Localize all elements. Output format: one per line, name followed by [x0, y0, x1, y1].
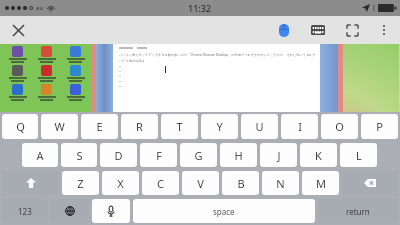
button[interactable]: C — [142, 171, 179, 195]
staticText: パソコン側でセットアップする手順の多いのが「Chrome Remote Desk… — [119, 53, 316, 63]
button[interactable]: X — [102, 171, 139, 195]
staticText: W — [54, 119, 65, 134]
staticText: D — [114, 148, 123, 163]
staticText: X — [117, 176, 124, 191]
button[interactable]: Y — [201, 114, 238, 139]
staticText: L — [356, 148, 362, 163]
button[interactable]: Change language — [51, 199, 89, 223]
button[interactable]: S — [61, 143, 97, 167]
button[interactable]: M — [302, 171, 339, 195]
button[interactable]: U — [241, 114, 278, 139]
staticText: H — [234, 148, 243, 163]
button[interactable]: 123 — [2, 199, 48, 223]
staticText: M — [316, 176, 326, 191]
staticText: S — [76, 148, 83, 163]
staticText: C — [157, 176, 164, 191]
staticText: E — [96, 119, 103, 134]
button[interactable]: More options — [372, 18, 396, 42]
button[interactable]: K — [300, 143, 337, 167]
staticText: G — [194, 148, 203, 163]
button[interactable]: G — [180, 143, 217, 167]
staticText: R — [136, 119, 143, 134]
button[interactable]: N — [262, 171, 299, 195]
button[interactable]: L — [340, 143, 377, 167]
button[interactable]: I — [281, 114, 318, 139]
button[interactable]: H — [220, 143, 257, 167]
staticText: B — [237, 176, 245, 191]
button[interactable]: P — [361, 114, 398, 139]
staticText: 123 — [18, 206, 32, 217]
staticText: N — [276, 176, 285, 191]
staticText: Q — [16, 119, 25, 134]
staticText: return — [346, 206, 370, 217]
button[interactable]: V — [182, 171, 219, 195]
staticText: I — [298, 119, 302, 134]
button[interactable]: A — [22, 143, 58, 167]
button[interactable]: Q — [2, 114, 38, 139]
staticText: Z — [77, 176, 84, 191]
button[interactable]: return — [318, 199, 398, 223]
staticText: 11:32 — [188, 2, 212, 14]
button[interactable]: T — [161, 114, 198, 139]
button[interactable]: E — [81, 114, 118, 139]
staticText: T — [176, 119, 183, 134]
button[interactable]: W — [41, 114, 78, 139]
staticText: au — [36, 4, 44, 12]
staticText: O — [335, 119, 344, 134]
staticText: A — [36, 148, 44, 163]
button[interactable]: Close — [6, 18, 30, 42]
staticText: space — [213, 206, 235, 217]
button[interactable]: R — [121, 114, 158, 139]
button[interactable]: Backspace — [342, 171, 398, 195]
staticText: J — [277, 148, 281, 163]
button[interactable]: Mouse mode — [272, 18, 296, 42]
staticText: U — [255, 119, 264, 134]
button[interactable]: Z — [62, 171, 99, 195]
button[interactable]: Voice input — [92, 199, 130, 223]
button[interactable]: D — [100, 143, 137, 167]
button[interactable]: B — [222, 171, 259, 195]
button[interactable]: Keyboard — [306, 18, 330, 42]
staticText: K — [315, 148, 322, 163]
staticText: V — [197, 176, 204, 191]
staticText: P — [376, 119, 383, 134]
staticText: Y — [216, 119, 223, 134]
button[interactable]: F — [140, 143, 177, 167]
button[interactable]: O — [321, 114, 358, 139]
button[interactable]: Shift — [2, 171, 59, 195]
button[interactable]: J — [260, 143, 297, 167]
button[interactable]: space — [133, 199, 315, 223]
staticText: F — [156, 148, 162, 163]
button[interactable]: Fullscreen — [340, 18, 364, 42]
